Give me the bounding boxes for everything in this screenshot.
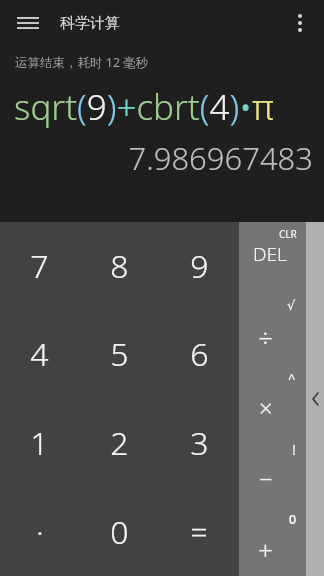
button[interactable]: 0 (79, 487, 159, 576)
button[interactable]: 8 (79, 222, 159, 310)
button[interactable]: 4 (0, 310, 79, 398)
staticText: ⁰ (289, 511, 296, 538)
button[interactable]: More options (280, 3, 320, 43)
staticText: 7.986967483 (0, 137, 313, 179)
staticText: + (258, 532, 273, 567)
button[interactable]: 3 (159, 398, 239, 487)
button[interactable]: ! (239, 434, 306, 505)
staticText: 0 (110, 510, 129, 554)
staticText: 运算结束，耗时 12 毫秒 (15, 54, 149, 71)
staticText: 7 (30, 244, 49, 288)
staticText: · (36, 511, 44, 552)
staticText: 4 (30, 332, 49, 376)
button[interactable]: · (0, 487, 79, 576)
staticText: 8 (110, 244, 129, 288)
staticText: ^ (288, 369, 296, 387)
staticText: CLR (279, 227, 297, 241)
staticText: × (259, 391, 273, 424)
button[interactable]: = (159, 487, 239, 576)
staticText: 9 (190, 244, 209, 288)
staticText: ! (292, 440, 296, 459)
button[interactable]: CLR (239, 222, 306, 292)
button[interactable]: 2 (79, 398, 159, 487)
staticText: 2 (110, 421, 129, 465)
staticText: sqrt(9)+cbrt(4)•π (14, 83, 314, 131)
staticText: DEL (253, 241, 287, 267)
staticText: 3 (190, 421, 209, 465)
staticText: 6 (190, 332, 209, 376)
button[interactable]: ⁰ (239, 505, 306, 576)
staticText: = (190, 511, 208, 552)
button[interactable]: 7 (0, 222, 79, 310)
button[interactable]: 9 (159, 222, 239, 310)
button[interactable]: ^ (239, 363, 306, 434)
button[interactable]: Menu (8, 3, 48, 43)
staticText: 5 (110, 332, 129, 376)
staticText: 1 (30, 421, 49, 465)
button[interactable]: 6 (159, 310, 239, 398)
staticText: √ (287, 298, 296, 313)
button[interactable]: √ (239, 292, 306, 363)
staticText: ÷ (258, 319, 273, 354)
button[interactable]: 1 (0, 398, 79, 487)
button[interactable]: 5 (79, 310, 159, 398)
staticText: − (259, 462, 273, 495)
button[interactable]: Open panel (306, 222, 324, 576)
staticText: 科学计算 (60, 14, 120, 33)
